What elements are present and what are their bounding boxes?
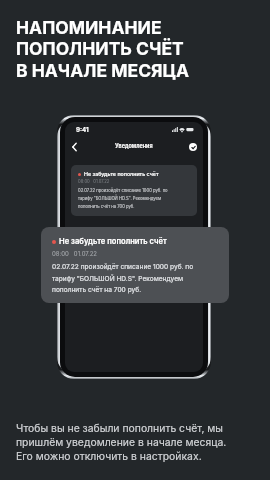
staticText: 08:00 01.07.22 [78,179,110,184]
button[interactable]: Не забудьте пополнить счёт [41,227,229,303]
staticText: Уведомления [115,143,153,150]
staticText: Чтобы вы не забыли пополнить счёт, мы пр… [16,422,227,463]
staticText: 02.07.22 произойдёт списание 1000 руб. п… [52,263,215,293]
staticText: НАПОМИНАНИЕ ПОПОЛНИТЬ СЧЁТ В НАЧАЛЕ МЕСЯ… [16,17,190,81]
staticText: Не забудьте пополнить счёт [59,237,167,246]
button[interactable]: Не забудьте пополнить счёт [71,165,197,216]
button[interactable]: Back [68,140,82,154]
staticText: 08:00 01.07.22 [52,250,98,257]
staticText: Не забудьте пополнить счёт [84,171,159,177]
button[interactable]: Mark all as read [186,140,200,154]
staticText: 02.07.22 произойдёт списание 1000 руб. п… [78,188,172,209]
staticText: 9:41 [76,126,89,134]
